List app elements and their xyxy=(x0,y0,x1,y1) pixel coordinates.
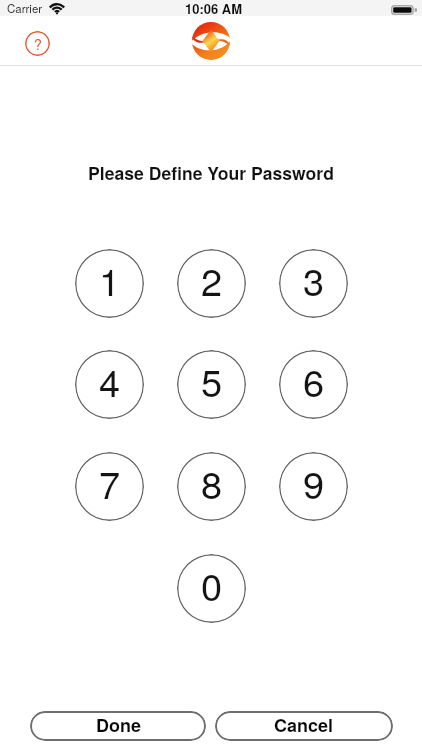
staticText: 9 xyxy=(303,455,325,509)
button[interactable]: Done xyxy=(30,711,206,741)
button[interactable]: 3 xyxy=(279,249,348,318)
staticText: Done xyxy=(96,712,141,738)
button[interactable]: 6 xyxy=(279,350,348,419)
staticText: Cancel xyxy=(274,712,334,738)
staticText: ? xyxy=(34,34,42,54)
button[interactable]: 5 xyxy=(177,350,246,419)
staticText: 10:06 AM xyxy=(185,0,243,15)
staticText: 0 xyxy=(201,557,223,611)
staticText: Please Define Your Password xyxy=(0,160,422,185)
staticText: 3 xyxy=(303,252,325,306)
staticText: Carrier xyxy=(7,0,43,16)
staticText: 5 xyxy=(201,353,223,407)
button[interactable]: Cancel xyxy=(215,711,393,741)
button[interactable]: 8 xyxy=(177,452,246,521)
button[interactable]: 1 xyxy=(75,249,144,318)
button[interactable]: Help xyxy=(25,31,50,56)
staticText: 6 xyxy=(303,353,325,407)
staticText: 7 xyxy=(99,455,121,509)
staticText: 8 xyxy=(201,455,223,509)
staticText: 4 xyxy=(99,353,121,407)
button[interactable]: 9 xyxy=(279,452,348,521)
staticText: 2 xyxy=(201,252,223,306)
button[interactable]: 7 xyxy=(75,452,144,521)
button[interactable]: 4 xyxy=(75,350,144,419)
staticText: 1 xyxy=(99,252,121,306)
button[interactable]: 2 xyxy=(177,249,246,318)
button[interactable]: 0 xyxy=(177,554,246,623)
